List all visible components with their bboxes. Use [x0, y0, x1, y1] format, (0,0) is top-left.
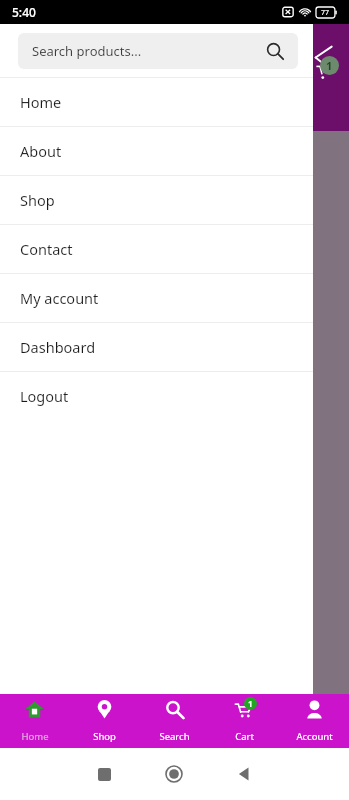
- staticText: 5:40: [12, 4, 36, 20]
- staticText: Dashboard: [20, 337, 96, 357]
- staticText: 77: [321, 8, 330, 18]
- button[interactable]: Contact: [0, 225, 313, 273]
- staticText: Search products...: [32, 42, 266, 60]
- button[interactable]: About: [0, 127, 313, 175]
- button[interactable]: Recents: [69, 768, 139, 781]
- staticText: Home: [20, 92, 62, 112]
- staticText: Shop: [20, 190, 55, 210]
- button[interactable]: Dashboard: [0, 323, 313, 371]
- button[interactable]: 1: [209, 694, 279, 748]
- button[interactable]: Home: [0, 78, 313, 126]
- button[interactable]: Search products...: [18, 33, 298, 69]
- staticText: 1: [248, 698, 253, 709]
- button[interactable]: Logout: [0, 372, 313, 420]
- button[interactable]: Shop: [0, 176, 313, 224]
- button[interactable]: Shop: [69, 694, 139, 748]
- button[interactable]: Home: [139, 765, 209, 783]
- staticText: Account: [296, 730, 333, 743]
- staticText: Cart: [235, 730, 254, 743]
- staticText: Logout: [20, 386, 69, 406]
- button[interactable]: Search: [139, 694, 209, 748]
- button[interactable]: Home: [0, 694, 69, 748]
- staticText: Home: [21, 730, 49, 743]
- staticText: Contact: [20, 239, 73, 259]
- staticText: 1: [326, 58, 333, 73]
- staticText: My account: [20, 288, 99, 308]
- button[interactable]: Account: [279, 694, 349, 748]
- staticText: Shop: [93, 730, 116, 743]
- button[interactable]: Back: [209, 766, 279, 782]
- staticText: Search: [159, 730, 190, 743]
- button[interactable]: My account: [0, 274, 313, 322]
- staticText: About: [20, 141, 62, 161]
